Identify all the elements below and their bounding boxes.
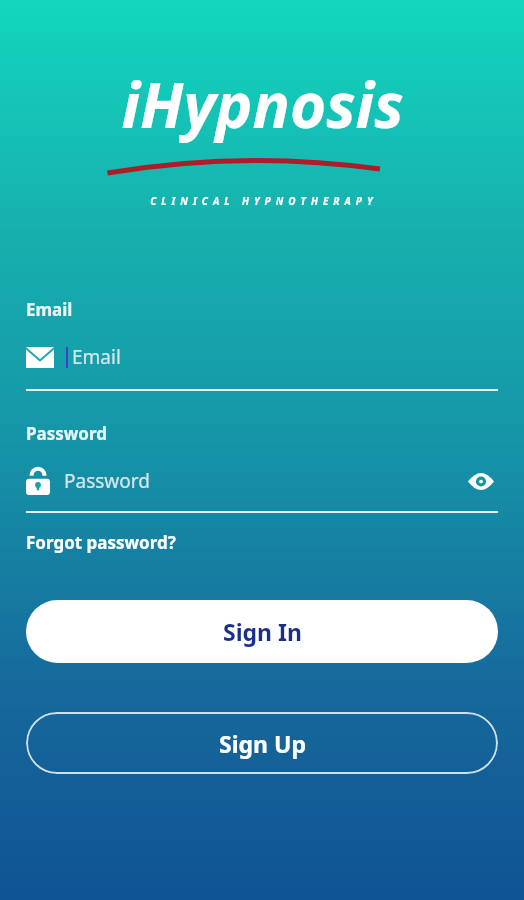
button[interactable]: Email (26, 337, 498, 377)
staticText: Email (72, 344, 121, 370)
staticText: iHypnosis (121, 62, 404, 146)
button[interactable]: Sign In (26, 600, 498, 663)
button[interactable]: Sign Up (26, 712, 498, 774)
staticText: Sign In (223, 616, 302, 647)
staticText: Password (26, 422, 107, 445)
staticText: Password (64, 468, 464, 494)
button[interactable]: Show password (464, 464, 498, 498)
staticText: Email (26, 298, 73, 321)
staticText: Sign Up (219, 728, 306, 759)
button[interactable]: Password (26, 461, 498, 501)
staticText: Forgot password? (26, 531, 176, 554)
staticText: C L I N I C A L H Y P N O T H E R A P Y (0, 194, 524, 208)
button[interactable]: Forgot password? (26, 531, 176, 554)
